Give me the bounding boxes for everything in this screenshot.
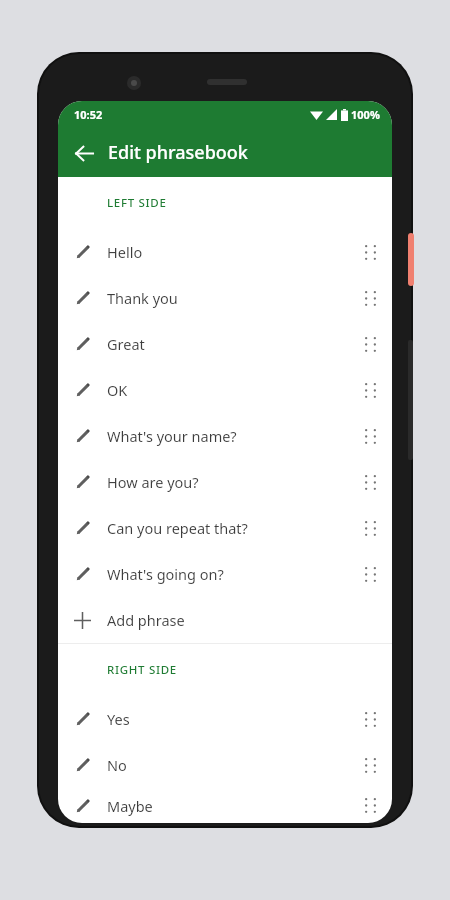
button[interactable]: Yes xyxy=(58,696,392,742)
other: Power xyxy=(408,233,414,286)
staticText: Great xyxy=(107,334,145,354)
button[interactable]: What's your name? xyxy=(58,413,392,459)
button[interactable]: Can you repeat that? xyxy=(58,505,392,551)
button[interactable]: Add phrase xyxy=(58,597,392,643)
staticText: RIGHT SIDE xyxy=(107,662,177,678)
staticText: What's your name? xyxy=(107,426,237,446)
staticText: Edit phrasebook xyxy=(108,140,248,165)
staticText: How are you? xyxy=(107,472,199,492)
staticText: 10:52 xyxy=(74,107,103,122)
staticText: Yes xyxy=(107,709,130,729)
button[interactable]: What's going on? xyxy=(58,551,392,597)
staticText: OK xyxy=(107,380,128,400)
button[interactable]: Great xyxy=(58,321,392,367)
button[interactable]: OK xyxy=(58,367,392,413)
button[interactable]: Hello xyxy=(58,229,392,275)
staticText: Thank you xyxy=(107,288,178,308)
staticText: What's going on? xyxy=(107,564,224,584)
staticText: Hello xyxy=(107,242,143,262)
staticText: No xyxy=(107,755,127,775)
staticText: 100% xyxy=(351,107,380,122)
staticText: Can you repeat that? xyxy=(107,518,248,538)
staticText: Add phrase xyxy=(107,610,185,630)
staticText: LEFT SIDE xyxy=(107,195,167,211)
button[interactable]: No xyxy=(58,742,392,788)
button[interactable]: Thank you xyxy=(58,275,392,321)
staticText: Maybe xyxy=(107,796,153,816)
button[interactable]: Back xyxy=(66,135,102,171)
button[interactable]: Maybe xyxy=(58,788,392,823)
button[interactable]: How are you? xyxy=(58,459,392,505)
